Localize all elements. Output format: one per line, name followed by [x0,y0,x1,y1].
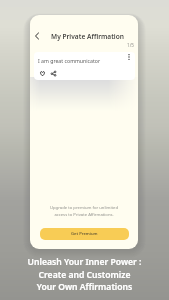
staticText: My Private Affirmation [51,32,124,41]
button[interactable]: Back [30,29,43,42]
button[interactable]: Favorite [37,68,47,78]
button[interactable]: Share [48,68,58,78]
staticText: 1/5 [127,42,134,48]
button[interactable]: Get Premium [40,228,129,240]
button[interactable]: More options [124,52,134,62]
button[interactable]: I am great communicator [34,52,135,80]
staticText: Upgrade to premium for unlimited access … [30,205,138,217]
staticText: Unleash Your Inner Power : Create and Cu… [0,256,169,292]
staticText: I am great communicator [38,57,101,64]
staticText: Get Premium [71,231,98,237]
